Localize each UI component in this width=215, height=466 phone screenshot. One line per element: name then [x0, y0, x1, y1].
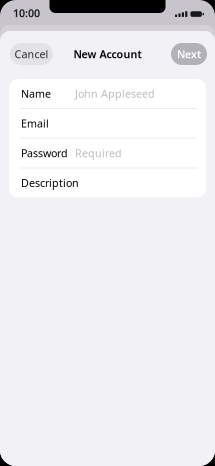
staticText: Email: [21, 116, 49, 130]
staticText: Description: [21, 176, 79, 190]
staticText: New Account: [73, 47, 141, 61]
button[interactable]: Cancel: [10, 43, 53, 65]
button[interactable]: Name: [9, 79, 206, 108]
staticText: John Appleseed: [75, 86, 155, 101]
staticText: Required: [75, 146, 122, 160]
button[interactable]: Email: [9, 109, 206, 138]
staticText: Password: [21, 146, 68, 160]
staticText: 10:00: [13, 6, 40, 20]
staticText: Name: [21, 86, 51, 101]
staticText: Next: [177, 47, 201, 61]
button[interactable]: Password: [9, 139, 206, 168]
button[interactable]: Next: [171, 43, 207, 65]
button[interactable]: Description: [9, 168, 206, 197]
staticText: Cancel: [14, 47, 48, 61]
